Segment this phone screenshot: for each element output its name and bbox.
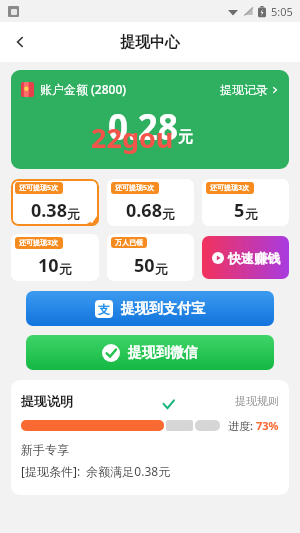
staticText: 账户金额 (2800): [40, 81, 127, 97]
staticText: 提现记录: [220, 82, 268, 97]
staticText: 5:05: [271, 4, 293, 19]
button[interactable]: 快速赚钱: [202, 236, 289, 279]
staticText: 还可提现3次: [210, 183, 250, 193]
staticText: 提现到微信: [128, 344, 198, 362]
button[interactable]: 提现规则: [235, 394, 279, 408]
staticText: 元: [59, 261, 72, 277]
staticText: 快速赚钱: [228, 250, 280, 266]
staticText: 0.28: [108, 103, 178, 151]
staticText: 元: [245, 206, 258, 222]
staticText: 还可提现5次: [19, 183, 59, 193]
staticText: 5: [234, 198, 245, 223]
staticText: 提现中心: [120, 33, 180, 52]
button[interactable]: 还可提现3次: [11, 234, 99, 281]
staticText: 0.38: [31, 198, 67, 223]
button[interactable]: 账户金额 (2800): [11, 70, 289, 169]
button[interactable]: 还可提现5次: [11, 179, 99, 226]
staticText: 进度:: [228, 418, 256, 433]
button[interactable]: Back: [0, 22, 40, 62]
staticText: 50: [134, 253, 155, 278]
staticText: 新手专享: [21, 442, 69, 457]
staticText: 提现说明: [21, 393, 73, 409]
staticText: 提现到支付宝: [121, 300, 205, 318]
staticText: 22gou: [91, 119, 174, 156]
button[interactable]: 提现记录: [220, 82, 279, 97]
staticText: 还可提现5次: [115, 183, 155, 193]
staticText: 元: [178, 128, 193, 147]
staticText: 元: [155, 261, 168, 277]
staticText: 元: [67, 206, 80, 222]
button[interactable]: 万人已领: [107, 234, 194, 281]
staticText: 73%: [256, 418, 279, 433]
staticText: [提现条件]: 余额满足0.38元: [21, 463, 171, 479]
button[interactable]: 还可提现5次: [107, 179, 194, 226]
staticText: 0.68: [126, 198, 162, 223]
staticText: 万人已领: [115, 238, 143, 247]
button[interactable]: 还可提现3次: [202, 179, 289, 226]
staticText: 支: [98, 302, 110, 317]
staticText: 10: [38, 253, 59, 278]
staticText: 还可提现3次: [19, 238, 59, 248]
staticText: 元: [162, 206, 175, 222]
button[interactable]: 提现到微信: [26, 335, 274, 370]
button[interactable]: 支: [26, 291, 274, 326]
